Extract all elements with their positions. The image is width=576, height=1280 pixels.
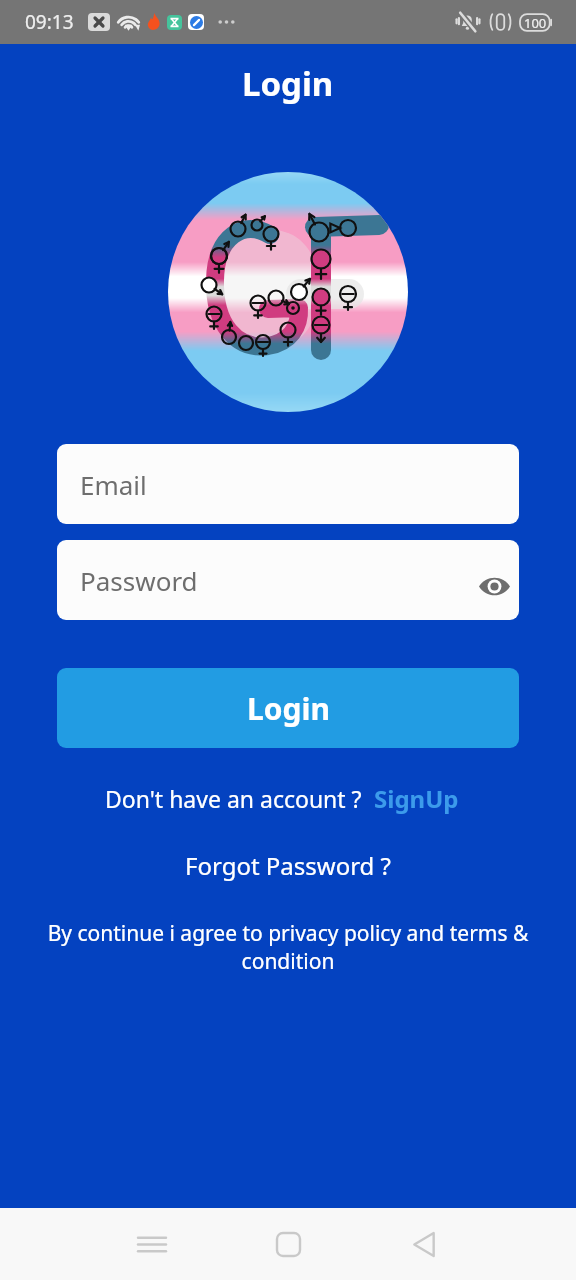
staticText: By continue i agree to privacy policy an… [40,919,536,975]
button[interactable]: Password [57,540,519,620]
staticText: SignUp [374,782,459,815]
button[interactable]: Email [57,444,519,524]
button[interactable]: Back [390,1210,458,1278]
staticText: Don't have an account ? [105,783,362,814]
staticText: Email [80,467,147,502]
button[interactable]: Recent apps [118,1210,186,1278]
staticText: Login [242,61,334,106]
button[interactable]: Show password [473,565,515,607]
staticText: 09:13 [25,9,74,35]
staticText: Login [247,688,330,729]
button[interactable]: Home [254,1210,322,1278]
staticText: Password [80,563,198,598]
button[interactable]: SignUp [374,782,459,815]
staticText: Forgot Password ? [185,849,392,882]
staticText: 100 [524,14,547,32]
button[interactable]: Login [57,668,519,748]
button[interactable]: Forgot Password ? [185,849,392,882]
